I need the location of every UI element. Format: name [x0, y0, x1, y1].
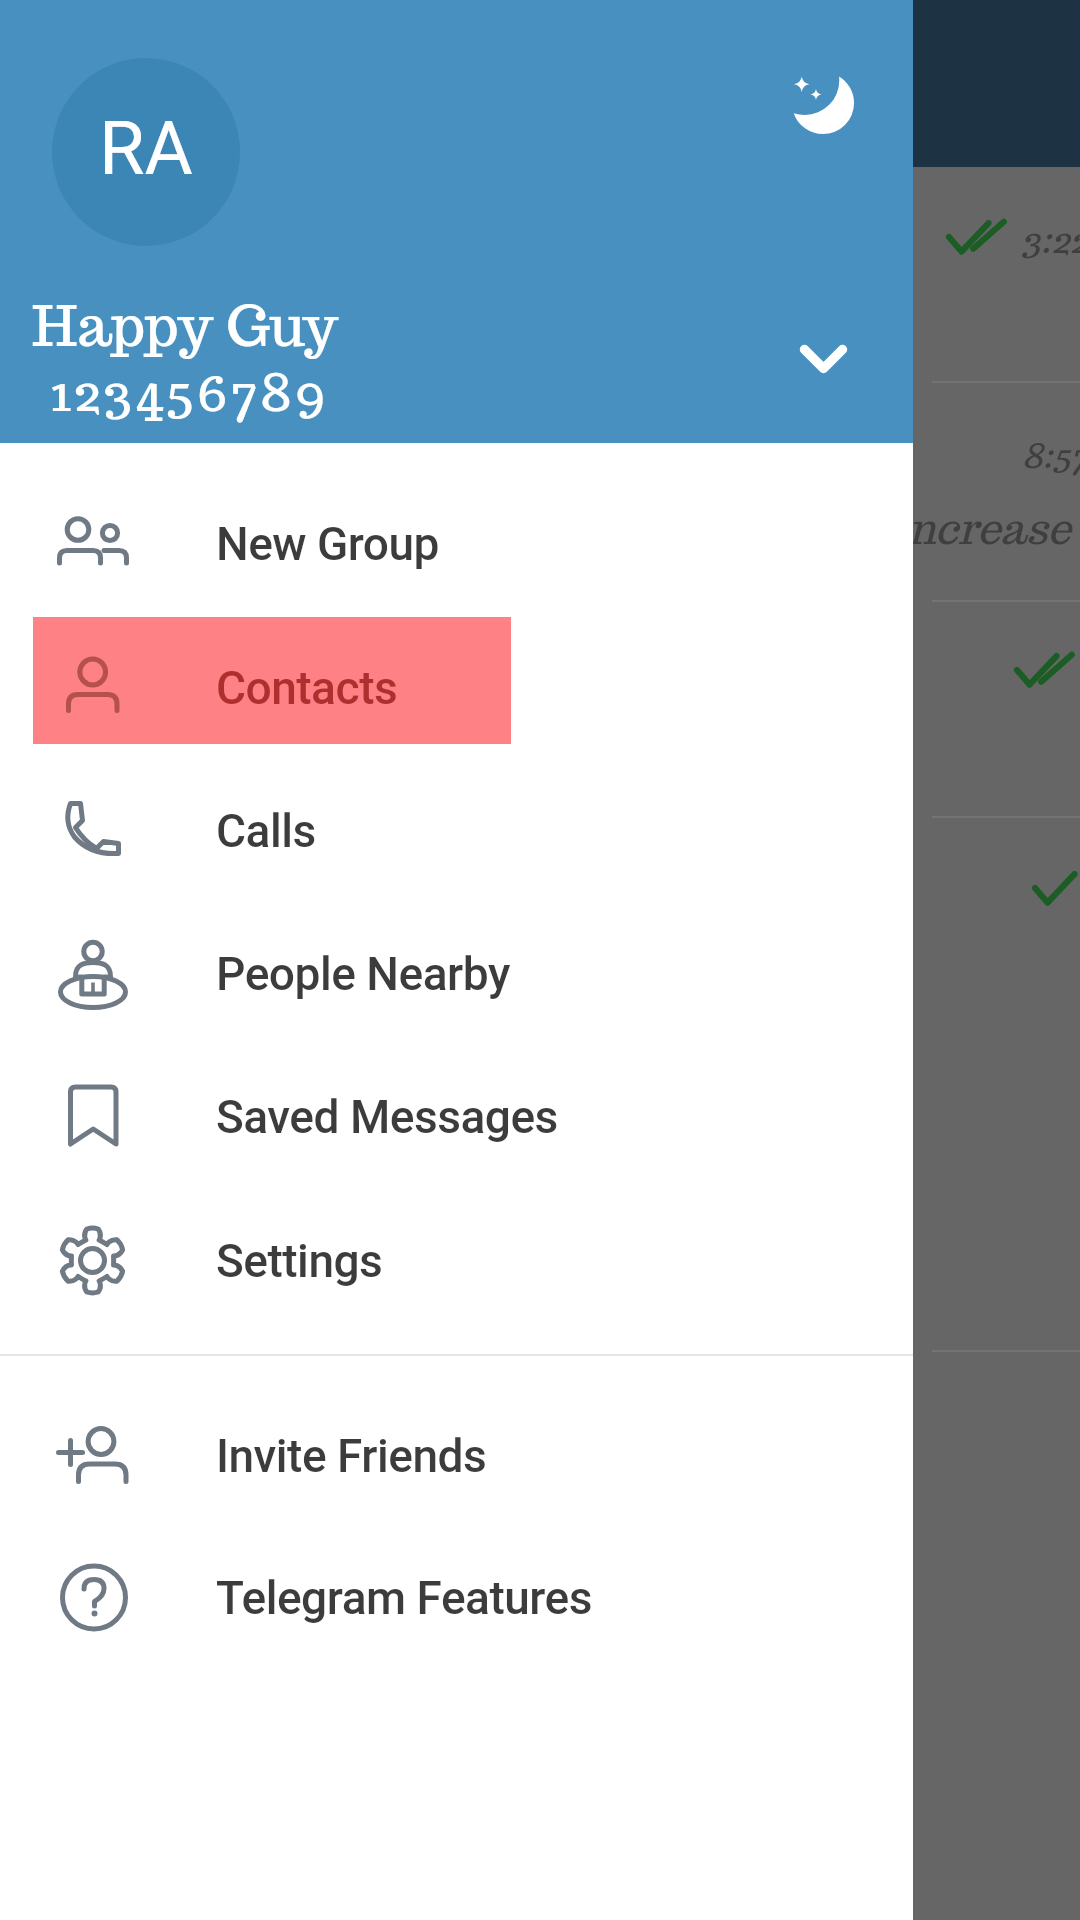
- staticText: ncrease: [908, 501, 1071, 556]
- button[interactable]: Saved Messages: [0, 1045, 913, 1188]
- button[interactable]: People Nearby: [0, 902, 913, 1045]
- staticText: 8:57: [1022, 433, 1080, 477]
- button[interactable]: New Group: [0, 472, 913, 615]
- staticText: Contacts: [216, 661, 398, 715]
- staticText: 123456789: [50, 358, 329, 426]
- staticText: Saved Messages: [216, 1090, 558, 1144]
- button[interactable]: Invite Friends: [0, 1384, 913, 1527]
- staticText: New Group: [216, 517, 439, 571]
- button[interactable]: Calls: [0, 759, 913, 902]
- staticText: Calls: [216, 804, 316, 858]
- button[interactable]: Night mode: [775, 58, 869, 152]
- button[interactable]: Settings: [0, 1189, 913, 1332]
- staticText: Happy Guy: [32, 289, 339, 362]
- staticText: Telegram Features: [216, 1571, 593, 1625]
- staticText: 3:22: [1021, 216, 1080, 263]
- staticText: People Nearby: [216, 947, 510, 1001]
- staticText: Settings: [216, 1234, 383, 1288]
- staticText: RA: [99, 105, 193, 192]
- button[interactable]: Contacts: [0, 616, 913, 759]
- button[interactable]: Telegram Features: [0, 1526, 913, 1669]
- staticText: Invite Friends: [216, 1429, 487, 1483]
- button[interactable]: Expand accounts: [788, 324, 860, 396]
- button[interactable]: RA: [52, 58, 240, 246]
